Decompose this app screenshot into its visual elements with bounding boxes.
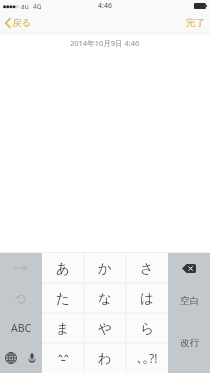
button[interactable]: 完了 — [181, 12, 210, 34]
staticText: さ — [140, 260, 154, 277]
button[interactable]: ら — [126, 313, 168, 343]
button[interactable]: や — [84, 313, 126, 343]
staticText: は — [140, 290, 154, 307]
button[interactable]: ABC keyboard — [0, 313, 42, 343]
staticText: な — [98, 290, 112, 307]
button[interactable]: か — [84, 253, 126, 283]
staticText: た — [56, 290, 70, 307]
button[interactable]: 空白 — [168, 284, 210, 318]
button[interactable]: Dictation — [21, 343, 42, 373]
staticText: ら — [140, 320, 154, 337]
staticText: 4:46 — [98, 1, 112, 11]
staticText: ､｡?! — [137, 350, 158, 366]
button[interactable]: ま — [42, 313, 84, 343]
staticText: 戻る — [12, 17, 32, 29]
button[interactable]: Delete — [168, 253, 210, 284]
button[interactable]: は — [126, 283, 168, 313]
staticText: や — [98, 320, 112, 337]
button[interactable]: あ — [42, 253, 84, 283]
button[interactable]: ､｡?! — [126, 343, 168, 373]
staticText: au — [21, 2, 29, 11]
staticText: 4G — [33, 2, 42, 11]
staticText: あ — [56, 260, 70, 277]
button[interactable]: さ — [126, 253, 168, 283]
button[interactable] — [42, 343, 84, 373]
button[interactable]: た — [42, 283, 84, 313]
staticText: 完了 — [186, 17, 205, 29]
staticText: わ — [98, 350, 112, 367]
staticText: 2014年10月9日 4:46 — [70, 38, 140, 48]
button[interactable]: な — [84, 283, 126, 313]
button[interactable]: 戻る — [0, 12, 38, 34]
button[interactable]: 改行 — [168, 318, 210, 367]
staticText: 空白 — [180, 295, 199, 307]
button[interactable]: Change language — [0, 343, 21, 373]
staticText: 改行 — [180, 337, 199, 349]
staticText: か — [98, 260, 112, 277]
staticText: ま — [56, 320, 70, 337]
staticText: ABC — [11, 321, 32, 335]
button[interactable]: わ — [84, 343, 126, 373]
